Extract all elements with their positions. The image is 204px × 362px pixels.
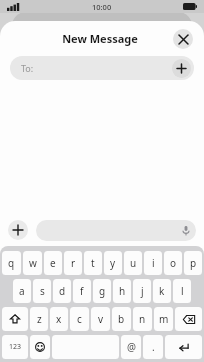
- staticText: c: [77, 312, 82, 326]
- button[interactable]: g: [93, 279, 111, 303]
- staticText: y: [110, 256, 116, 270]
- staticText: n: [139, 312, 146, 326]
- button[interactable]: @: [121, 335, 141, 359]
- button[interactable]: m: [154, 307, 173, 331]
- staticText: k: [159, 284, 165, 298]
- button[interactable]: n: [133, 307, 152, 331]
- button[interactable]: i: [144, 251, 162, 275]
- staticText: p: [190, 256, 197, 270]
- button[interactable]: w: [23, 251, 42, 275]
- button[interactable]: t: [84, 251, 102, 275]
- staticText: 123: [9, 342, 22, 352]
- button[interactable]: x: [50, 307, 68, 331]
- button[interactable]: p: [184, 251, 202, 275]
- staticText: h: [119, 284, 126, 298]
- staticText: x: [56, 312, 62, 326]
- button[interactable]: a: [13, 279, 31, 303]
- button[interactable]: k: [153, 279, 171, 303]
- button[interactable]: f: [73, 279, 91, 303]
- button[interactable]: Emoji: [30, 335, 50, 359]
- button[interactable]: c: [70, 307, 89, 331]
- button[interactable]: Return: [165, 335, 202, 359]
- staticText: New Message: [62, 31, 138, 46]
- staticText: w: [29, 256, 37, 270]
- staticText: r: [71, 256, 76, 270]
- staticText: o: [170, 256, 177, 270]
- button[interactable]: s: [33, 279, 51, 303]
- staticText: j: [141, 284, 144, 298]
- staticText: b: [118, 312, 125, 326]
- button[interactable]: q: [2, 251, 21, 275]
- button[interactable]: e: [44, 251, 62, 275]
- staticText: m: [159, 312, 169, 326]
- staticText: f: [80, 284, 84, 298]
- button[interactable]: To:: [10, 56, 194, 80]
- button[interactable]: Add contact: [172, 59, 191, 78]
- staticText: l: [181, 284, 184, 298]
- button[interactable]: Backspace: [175, 307, 202, 331]
- staticText: t: [91, 256, 95, 270]
- button[interactable]: d: [53, 279, 71, 303]
- staticText: d: [59, 284, 66, 298]
- staticText: z: [37, 312, 42, 326]
- button[interactable]: b: [112, 307, 131, 331]
- staticText: v: [98, 312, 104, 326]
- button[interactable]: r: [64, 251, 82, 275]
- staticText: @: [127, 340, 136, 354]
- staticText: To:: [21, 62, 34, 74]
- staticText: q: [8, 256, 15, 270]
- button[interactable]: j: [133, 279, 151, 303]
- button[interactable]: Close: [173, 29, 193, 49]
- button[interactable]: z: [30, 307, 48, 331]
- button[interactable]: u: [124, 251, 142, 275]
- button[interactable]: Attach: [8, 220, 28, 240]
- staticText: g: [99, 284, 106, 298]
- button[interactable]: Shift: [2, 307, 28, 331]
- button[interactable]: v: [91, 307, 110, 331]
- button[interactable]: [36, 220, 196, 241]
- staticText: 10:00: [92, 2, 112, 12]
- staticText: u: [130, 256, 137, 270]
- button[interactable]: y: [104, 251, 122, 275]
- staticText: a: [19, 284, 25, 298]
- button[interactable]: 123: [2, 335, 28, 359]
- button[interactable]: h: [113, 279, 131, 303]
- staticText: i: [152, 256, 155, 270]
- button[interactable]: .: [143, 335, 163, 359]
- button[interactable]: l: [173, 279, 191, 303]
- staticText: s: [40, 284, 45, 298]
- staticText: e: [50, 256, 56, 270]
- button[interactable]: o: [164, 251, 182, 275]
- staticText: .: [152, 340, 155, 354]
